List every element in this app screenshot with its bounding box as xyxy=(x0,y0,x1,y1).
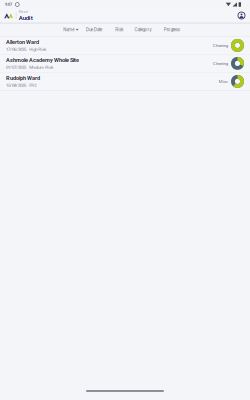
button[interactable]: Progress xyxy=(151,24,180,35)
staticText: 9:07 xyxy=(5,2,12,7)
staticText: Mead xyxy=(19,10,28,14)
button[interactable]: Allerton Ward xyxy=(0,37,250,54)
staticText: Audit xyxy=(19,14,33,21)
button[interactable]: Due Date xyxy=(78,24,102,35)
button[interactable]: Account xyxy=(238,12,250,19)
staticText: High Risk xyxy=(29,47,46,52)
staticText: Due Date xyxy=(86,27,102,32)
staticText: Ashmole Academy Whole Site xyxy=(6,57,79,63)
staticText: Cleaning xyxy=(213,43,228,48)
staticText: Risk xyxy=(115,27,123,32)
staticText: Rudolph Ward xyxy=(6,75,40,81)
button[interactable]: Ashmole Academy Whole Site xyxy=(0,55,250,72)
staticText: 15/08/2025 xyxy=(6,83,26,88)
button[interactable]: Name xyxy=(63,24,78,35)
staticText: Cleaning xyxy=(213,61,228,66)
staticText: FR2 xyxy=(29,83,36,88)
staticText: Progress xyxy=(164,27,180,32)
staticText: Name xyxy=(63,27,74,32)
staticText: 17/06/2025 xyxy=(6,47,26,52)
staticText: Allerton Ward xyxy=(6,39,39,45)
button[interactable]: Rudolph Ward xyxy=(0,73,250,90)
button[interactable]: Category xyxy=(123,24,151,35)
staticText: 01/07/2025 xyxy=(6,65,26,70)
staticText: Category xyxy=(134,27,151,32)
staticText: Medium Risk xyxy=(29,65,53,70)
staticText: Misc xyxy=(219,79,228,84)
button[interactable]: Risk xyxy=(102,24,123,35)
